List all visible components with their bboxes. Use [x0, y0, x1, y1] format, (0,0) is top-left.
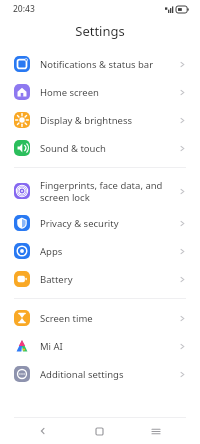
button[interactable]: Mi AI: [0, 332, 200, 360]
staticText: Notifications & status bar: [40, 58, 178, 71]
button[interactable]: Notifications & status bar: [0, 50, 200, 78]
staticText: Screen time: [40, 312, 178, 325]
staticText: Home screen: [40, 86, 178, 99]
button[interactable]: Display & brightness: [0, 106, 200, 134]
button[interactable]: Additional settings: [0, 360, 200, 388]
button[interactable]: Screen time: [0, 304, 200, 332]
staticText: Display & brightness: [40, 114, 178, 127]
staticText: Sound & touch: [40, 142, 178, 155]
staticText: Battery: [40, 273, 178, 286]
staticText: Settings: [75, 22, 125, 40]
button[interactable]: Battery: [0, 265, 200, 293]
button[interactable]: Back: [30, 418, 56, 444]
staticText: Additional settings: [40, 368, 178, 381]
staticText: Fingerprints, face data, and screen lock: [40, 179, 178, 204]
button[interactable]: Recent apps: [143, 418, 169, 444]
button[interactable]: Home screen: [0, 78, 200, 106]
button[interactable]: Privacy & security: [0, 209, 200, 237]
staticText: Apps: [40, 245, 178, 258]
staticText: Privacy & security: [40, 217, 178, 230]
staticText: Mi AI: [40, 340, 178, 353]
button[interactable]: Fingerprints, face data, and screen lock: [0, 173, 200, 209]
button[interactable]: Home: [86, 418, 112, 444]
button[interactable]: Sound & touch: [0, 134, 200, 162]
button[interactable]: Apps: [0, 237, 200, 265]
staticText: 20:43: [13, 3, 35, 15]
